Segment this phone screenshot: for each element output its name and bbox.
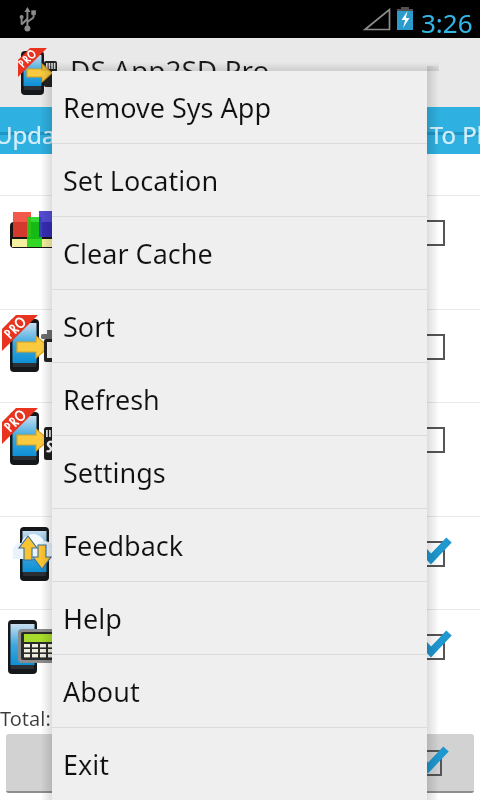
staticText: Move To Phone <box>362 118 480 151</box>
button[interactable]: Help <box>52 582 427 654</box>
button[interactable]: Advanced Task Killer <box>0 195 480 310</box>
button[interactable]: Select app <box>408 623 456 671</box>
button[interactable]: Settings <box>52 436 427 508</box>
staticText: Advanced Task Killer <box>64 213 313 248</box>
staticText: App Lock <box>64 627 176 662</box>
button[interactable]: Exit <box>52 728 427 800</box>
staticText: About <box>63 673 140 710</box>
button[interactable]: Remove Sys App <box>52 71 427 143</box>
staticText: Update Apps List <box>0 118 186 151</box>
staticText: Feedback <box>63 527 184 564</box>
staticText: 1.23 MB <box>64 248 141 275</box>
button[interactable]: Select all <box>6 734 474 793</box>
staticText: Settings <box>63 454 166 491</box>
button[interactable]: Update Apps List <box>0 107 237 154</box>
staticText: 3:26 <box>421 5 473 40</box>
button[interactable]: Select app <box>408 416 456 464</box>
staticText: Set Location <box>63 162 219 199</box>
staticText: 0.98 MB <box>64 662 141 689</box>
button[interactable]: Refresh <box>52 363 427 435</box>
button[interactable]: Move To Phone <box>240 107 480 154</box>
button[interactable]: App 2 SD Pro <box>0 309 480 403</box>
button[interactable]: Clear Cache <box>52 217 427 289</box>
staticText: Clear Cache <box>63 235 213 272</box>
staticText: Exit <box>63 746 110 783</box>
button[interactable]: DS App2SD Pro <box>0 38 480 107</box>
button[interactable]: Sort <box>52 290 427 362</box>
staticText: Refresh <box>63 381 160 418</box>
button[interactable]: Select all <box>407 741 451 785</box>
staticText: Help <box>63 600 122 637</box>
staticText: DS App2SD Pro <box>70 51 270 89</box>
button[interactable]: Select app <box>408 209 456 257</box>
button[interactable]: About <box>52 655 427 727</box>
staticText: 1.70 MB <box>64 455 141 482</box>
button[interactable]: Feedback <box>52 509 427 581</box>
staticText: Remove Sys App <box>63 89 272 126</box>
staticText: 2.40 MB <box>64 362 141 389</box>
button[interactable]: Select app <box>408 323 456 371</box>
button[interactable]: App 2 SD Pro <box>0 402 480 517</box>
button[interactable]: Set Location <box>52 144 427 216</box>
staticText: 3.40 MB <box>64 569 141 596</box>
staticText: Sort <box>63 308 116 345</box>
button[interactable]: App Backup <box>0 516 480 610</box>
staticText: App 2 SD Pro <box>64 327 223 362</box>
staticText: Total: <box>0 705 51 732</box>
button[interactable]: Select app <box>408 530 456 578</box>
staticText: App Backup <box>64 534 210 569</box>
button[interactable]: App Lock <box>0 609 480 724</box>
staticText: App 2 SD Pro <box>64 420 223 455</box>
